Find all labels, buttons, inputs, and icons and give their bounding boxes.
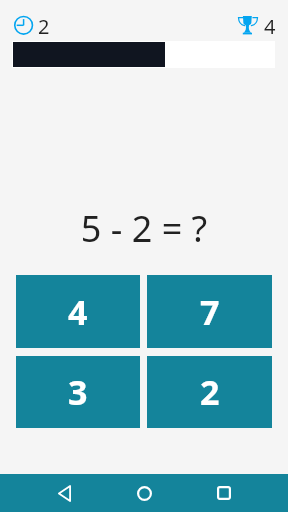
button[interactable]: Back [40, 474, 88, 512]
staticText: 3 [68, 369, 88, 415]
button[interactable]: Home [120, 474, 168, 512]
staticText: 4 [68, 289, 88, 335]
button[interactable]: 4 [16, 275, 140, 348]
staticText: 4 [264, 13, 276, 35]
staticText: 7 [200, 289, 220, 335]
button[interactable]: 2 [147, 356, 272, 428]
staticText: 5 - 2 = ? [0, 204, 288, 253]
button[interactable]: 7 [147, 275, 272, 348]
staticText: 2 [38, 13, 50, 35]
button[interactable]: 3 [16, 356, 140, 428]
button[interactable]: Recent apps [200, 474, 248, 512]
staticText: 2 [200, 369, 220, 415]
